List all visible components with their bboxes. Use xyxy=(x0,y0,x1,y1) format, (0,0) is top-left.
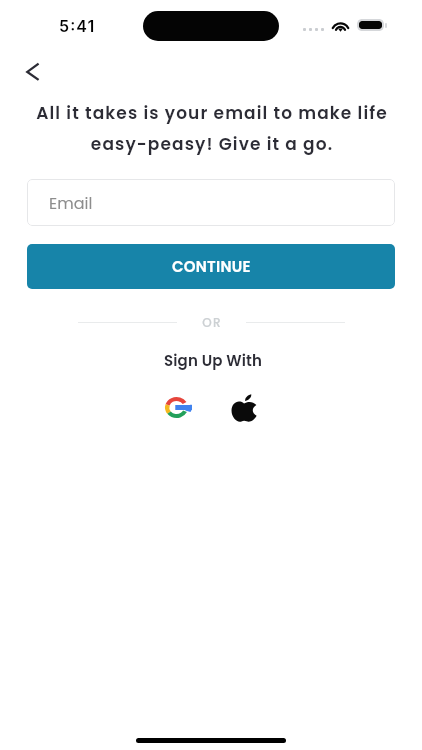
staticText: OR xyxy=(1,314,422,331)
staticText: 5:41 xyxy=(59,16,96,35)
staticText: Email xyxy=(49,192,93,214)
staticText: Sign Up With xyxy=(2,350,422,371)
button[interactable]: Sign up with Google xyxy=(160,389,196,425)
button[interactable]: Sign up with Apple xyxy=(225,389,263,427)
staticText: CONTINUE xyxy=(172,256,251,277)
button[interactable]: Back xyxy=(12,53,50,91)
button[interactable]: Email xyxy=(27,179,395,226)
staticText: All it takes is your email to make life … xyxy=(1,101,422,156)
button[interactable]: CONTINUE xyxy=(27,244,395,289)
